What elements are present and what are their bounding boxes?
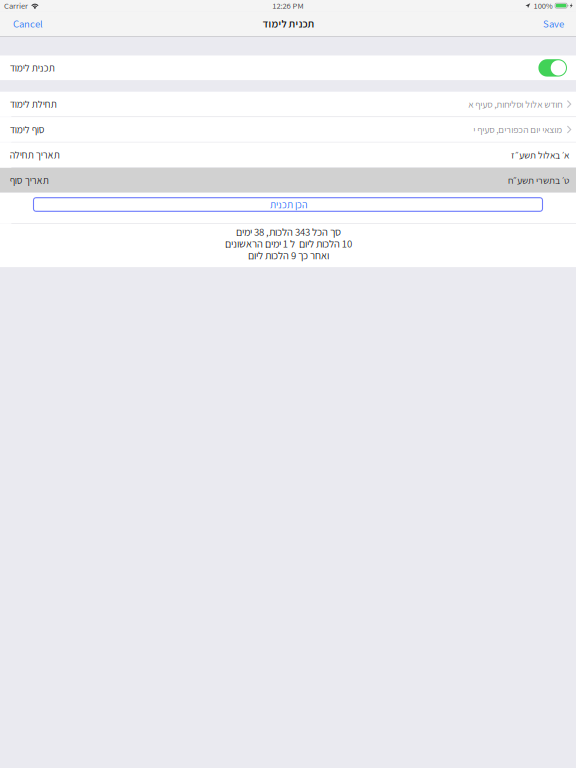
staticText: 100% xyxy=(534,0,553,11)
staticText: מוצאי יום הכפורים, סעיף י xyxy=(473,123,562,136)
staticText: ואחר כך 9 הלכות ליום xyxy=(247,248,328,262)
staticText: חודש אלול וסליחות, סעיף א xyxy=(468,98,562,110)
staticText: תכנית לימוד xyxy=(262,17,314,31)
staticText: א׳ באלול תשע״ז xyxy=(510,148,568,161)
staticText: סך הכל 343 הלכות, 38 ימים xyxy=(235,225,340,239)
button[interactable]: הכן תכנית xyxy=(0,193,576,223)
button[interactable]: תחילת לימוד xyxy=(0,92,576,116)
staticText: תכנית לימוד xyxy=(9,61,54,74)
staticText: 10 הלכות ליום ל 1 ימים הראשונים xyxy=(224,237,351,251)
staticText: Cancel xyxy=(13,17,43,31)
staticText: תאריך תחילה xyxy=(9,148,59,161)
staticText: תחילת לימוד xyxy=(9,98,56,111)
staticText: הכן תכנית xyxy=(269,198,306,211)
staticText: Save xyxy=(543,17,564,31)
button[interactable]: Save xyxy=(535,11,576,36)
staticText: תאריך סוף xyxy=(9,174,48,187)
button[interactable]: תאריך סוף xyxy=(0,168,576,193)
staticText: 12:26 PM xyxy=(272,0,303,11)
button[interactable]: תאריך תחילה xyxy=(0,142,576,167)
button[interactable]: Cancel xyxy=(0,11,51,36)
staticText: Carrier xyxy=(4,0,28,11)
staticText: ט׳ בתשרי תשע״ח xyxy=(507,174,568,187)
button[interactable]: סוף לימוד xyxy=(0,117,576,142)
staticText: סוף לימוד xyxy=(9,123,44,136)
button[interactable]: תכנית לימוד xyxy=(0,55,576,80)
